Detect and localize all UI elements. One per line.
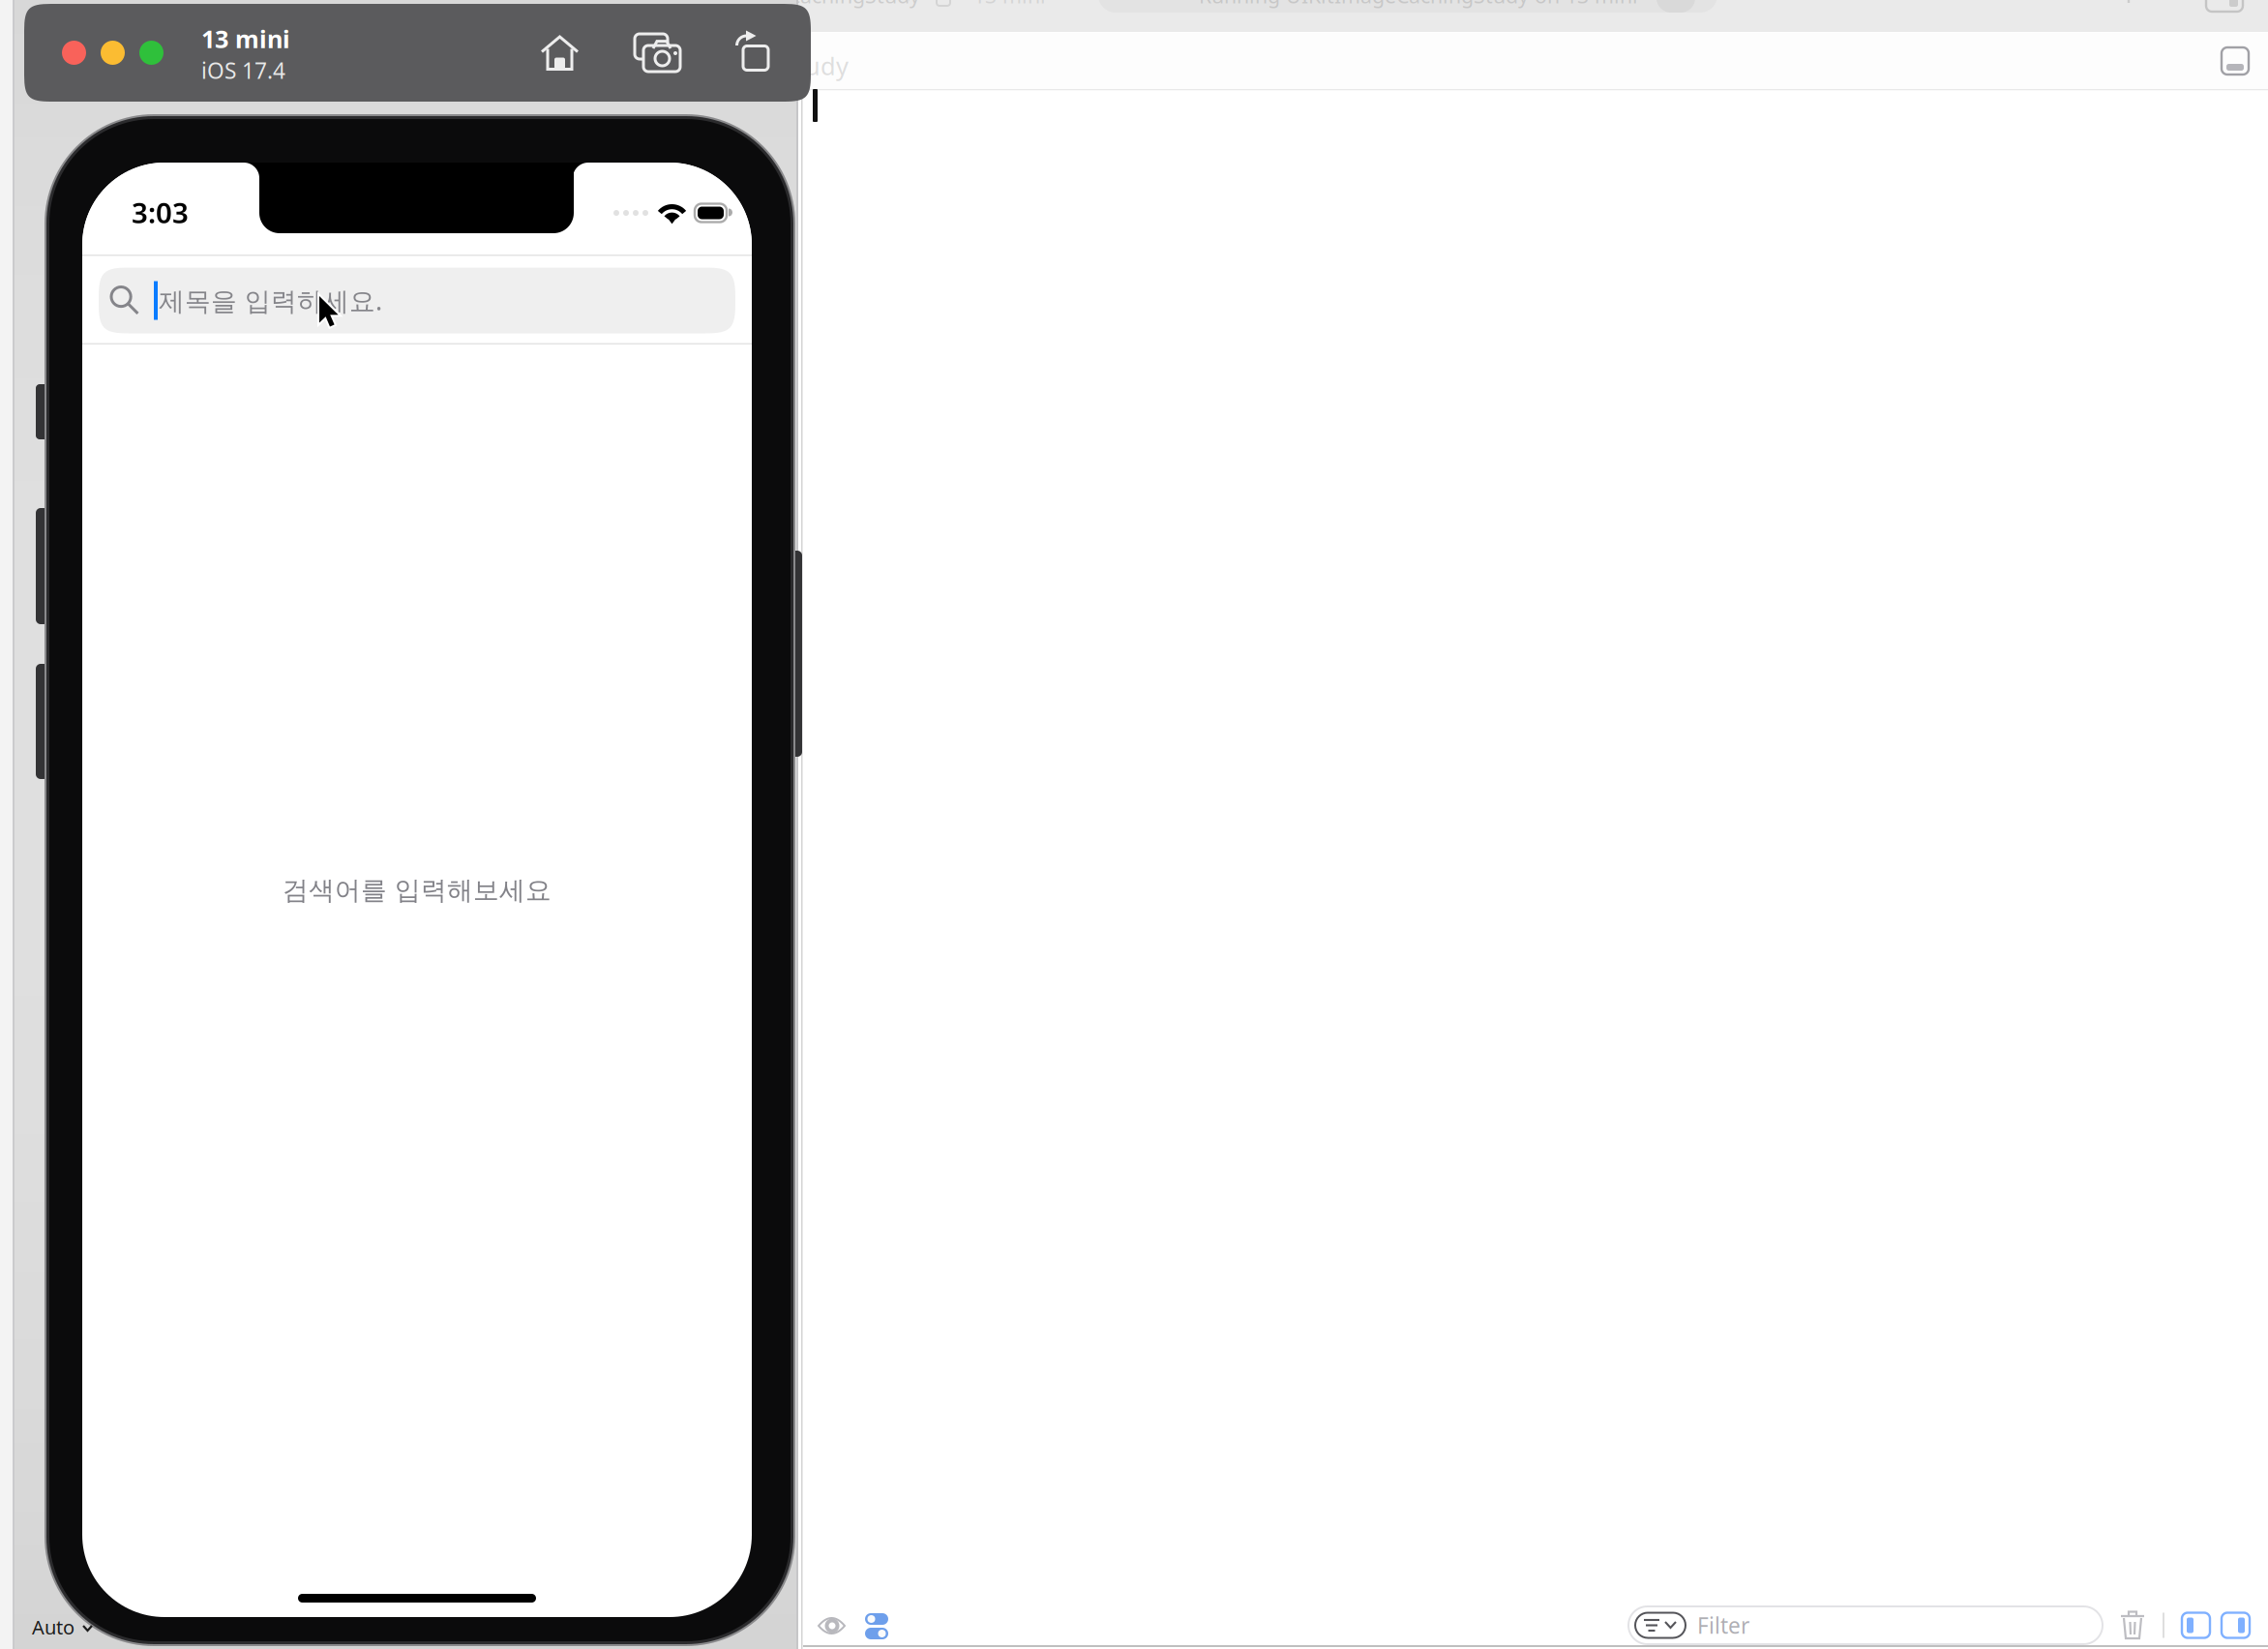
staticText: 13 mini	[973, 0, 1046, 9]
staticText: 3:03	[132, 194, 189, 231]
button[interactable]: Minimize	[101, 41, 125, 65]
button[interactable]: Toggle inspector	[2222, 1613, 2250, 1638]
button[interactable]: Home	[541, 35, 580, 70]
staticText: Auto	[32, 1614, 75, 1640]
button[interactable]: Preview options	[865, 1613, 888, 1639]
staticText: …Study	[763, 49, 849, 82]
staticText: 13 mini	[201, 22, 290, 55]
staticText: 검색어를 입력해보세요	[283, 874, 552, 906]
button[interactable]: Rotate	[735, 34, 769, 71]
staticText: iOS 17.4	[201, 56, 285, 85]
button[interactable]: Toggle debug area	[2182, 1613, 2210, 1638]
staticText: UIKitImageCachingStudy	[677, 0, 920, 9]
button[interactable]: Show preview	[818, 1617, 847, 1635]
button[interactable]: Minimap	[2222, 47, 2249, 75]
staticText: Running UIKitImageCachingStudy on 13 min…	[1199, 0, 1638, 9]
staticText: 제목을 입력하세요.	[159, 283, 382, 318]
button[interactable]: Full Screen	[139, 41, 164, 65]
button[interactable]: Clear console	[2116, 1608, 2149, 1643]
button[interactable]: Screenshot	[635, 34, 680, 72]
staticText: 〉	[905, 0, 925, 7]
button[interactable]: Close	[62, 41, 86, 65]
button[interactable]: Filter options	[1635, 1613, 1686, 1638]
staticText: Filter	[1697, 1611, 1749, 1640]
